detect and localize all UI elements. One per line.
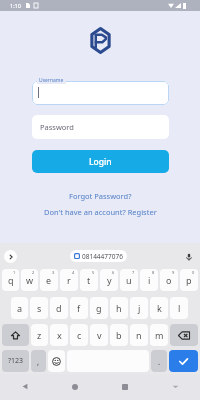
button[interactable]: Shift xyxy=(2,324,29,346)
staticText: 7 xyxy=(132,270,135,275)
staticText: a xyxy=(17,302,23,314)
button[interactable]: More suggestions xyxy=(4,250,17,263)
button[interactable]: p xyxy=(180,269,198,291)
button[interactable]: s xyxy=(30,297,48,319)
button[interactable]: g xyxy=(90,297,108,319)
button[interactable]: Back xyxy=(0,373,50,400)
button[interactable]: a xyxy=(11,297,28,319)
button[interactable]: y xyxy=(100,269,118,291)
button[interactable]: t xyxy=(80,269,98,291)
button[interactable]: k xyxy=(150,297,168,319)
staticText: 1 xyxy=(13,270,16,275)
button[interactable]: Password xyxy=(32,115,169,139)
button[interactable] xyxy=(32,81,169,105)
button[interactable]: Enter xyxy=(169,350,198,372)
staticText: 1:10 xyxy=(10,2,21,9)
staticText: 0 xyxy=(192,270,195,275)
button[interactable]: Home xyxy=(50,373,100,400)
button[interactable]: b xyxy=(110,324,128,346)
staticText: k xyxy=(157,302,162,314)
button[interactable]: w xyxy=(21,269,38,291)
staticText: f xyxy=(77,302,81,314)
button[interactable]: d xyxy=(50,297,68,319)
button[interactable] xyxy=(48,350,65,372)
staticText: c xyxy=(77,329,82,341)
staticText: x xyxy=(57,329,62,341)
staticText: u xyxy=(126,274,132,286)
staticText: 8 xyxy=(152,270,155,275)
button[interactable]: ?123 xyxy=(2,350,29,372)
button[interactable]: Don't have an account? Register xyxy=(40,205,161,219)
button[interactable]: o xyxy=(160,269,178,291)
staticText: s xyxy=(37,302,42,314)
button[interactable]: m xyxy=(150,324,168,346)
button[interactable]: r xyxy=(60,269,78,291)
staticText: 2 xyxy=(32,270,35,275)
staticText: o xyxy=(166,274,172,286)
staticText: ?123 xyxy=(8,356,24,366)
staticText: t xyxy=(87,274,91,286)
staticText: i xyxy=(148,274,151,286)
button[interactable]: q xyxy=(2,269,19,291)
staticText: j xyxy=(138,302,141,314)
button[interactable]: i xyxy=(140,269,158,291)
staticText: w xyxy=(26,274,34,286)
staticText: l xyxy=(178,302,181,314)
button[interactable]: x xyxy=(50,324,68,346)
staticText: p xyxy=(186,274,192,286)
button[interactable]: Hide keyboard xyxy=(150,373,200,400)
staticText: Login xyxy=(89,156,112,168)
button[interactable]: j xyxy=(130,297,148,319)
staticText: 3 xyxy=(52,270,55,275)
button[interactable]: n xyxy=(130,324,148,346)
button[interactable]: e xyxy=(40,269,58,291)
staticText: Don't have an account? Register xyxy=(44,207,157,217)
staticText: 5 xyxy=(92,270,95,275)
button[interactable]: h xyxy=(110,297,128,319)
staticText: e xyxy=(46,274,52,286)
staticText: v xyxy=(97,329,102,341)
staticText: Password xyxy=(40,122,74,132)
button[interactable]: Recents xyxy=(100,373,150,400)
button[interactable]: Period xyxy=(151,350,167,372)
staticText: h xyxy=(116,302,122,314)
button[interactable]: Voice input xyxy=(182,250,195,263)
staticText: d xyxy=(56,302,62,314)
staticText: Username xyxy=(39,77,64,84)
button[interactable]: Backspace xyxy=(170,324,198,346)
staticText: b xyxy=(116,329,122,341)
staticText: q xyxy=(8,274,14,286)
button[interactable]: c xyxy=(70,324,88,346)
staticText: n xyxy=(136,329,142,341)
staticText: 6 xyxy=(112,270,115,275)
button[interactable]: 08144477076 xyxy=(70,250,127,262)
button[interactable]: u xyxy=(120,269,138,291)
staticText: . xyxy=(158,356,161,367)
button[interactable]: l xyxy=(170,297,188,319)
staticText: Forgot Password? xyxy=(69,191,132,201)
staticText: 4 xyxy=(72,270,75,275)
staticText: g xyxy=(96,302,102,314)
button[interactable]: f xyxy=(70,297,88,319)
button[interactable]: v xyxy=(90,324,108,346)
staticText: y xyxy=(107,274,112,286)
button[interactable]: Login xyxy=(32,150,169,173)
button[interactable]: Forgot Password? xyxy=(65,189,136,203)
staticText: z xyxy=(37,329,42,341)
staticText: r xyxy=(67,274,71,286)
staticText: m xyxy=(155,329,164,341)
button[interactable]: Comma xyxy=(31,350,46,372)
staticText: 9 xyxy=(172,270,175,275)
staticText: , xyxy=(37,356,40,367)
staticText: 08144477076 xyxy=(82,252,123,261)
button[interactable]: z xyxy=(31,324,48,346)
